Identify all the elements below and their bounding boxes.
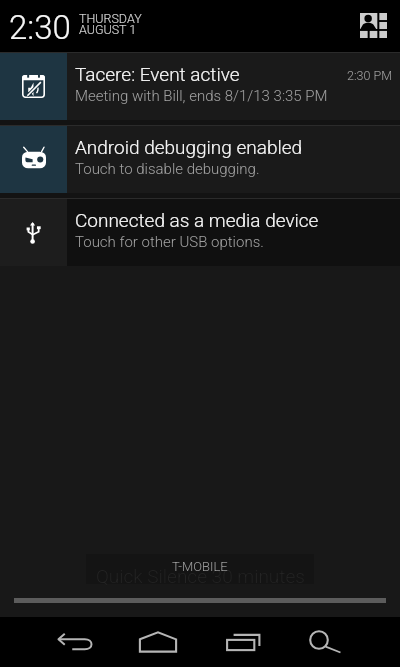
staticText: THURSDAY (79, 11, 142, 26)
staticText: Tacere: Event active (75, 63, 240, 85)
staticText: Touch to disable debugging. (75, 160, 260, 178)
button[interactable]: Tacere: Event active (0, 53, 400, 120)
button[interactable]: Close notification shade (0, 592, 400, 608)
staticText: Quick Silence 30 minutes (96, 565, 305, 587)
button[interactable]: Quick settings (352, 4, 395, 47)
button[interactable]: Recent apps (217, 617, 269, 667)
staticText: Meeting with Bill, ends 8/1/13 3:35 PM (75, 87, 328, 105)
button[interactable]: Search (299, 617, 351, 667)
staticText: T-MOBILE (172, 559, 228, 574)
staticText: Connected as a media device (75, 209, 319, 231)
button[interactable]: Connected as a media device (0, 199, 400, 266)
staticText: 2:30 (9, 8, 71, 47)
button[interactable]: Home (132, 617, 184, 667)
staticText: Android debugging enabled (75, 136, 303, 158)
staticText: AUGUST 1 (79, 22, 137, 37)
staticText: 2:30 PM (347, 68, 392, 83)
staticText: Touch for other USB options. (75, 233, 264, 251)
button[interactable]: Back (49, 617, 101, 667)
button[interactable]: Android debugging enabled (0, 126, 400, 193)
